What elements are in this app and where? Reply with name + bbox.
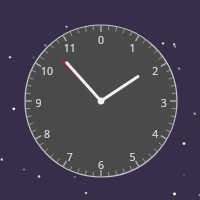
button[interactable]: Analog watch face <box>0 0 200 200</box>
